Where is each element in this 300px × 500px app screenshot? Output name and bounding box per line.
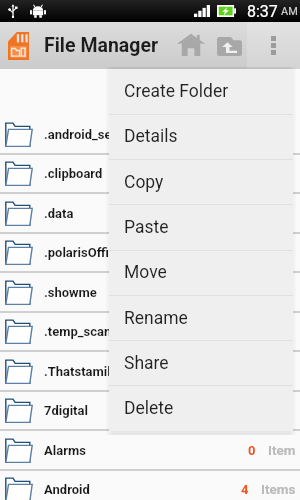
button[interactable]: .android_secure bbox=[0, 115, 300, 155]
button[interactable]: More options bbox=[247, 22, 300, 69]
button[interactable]: Home bbox=[174, 22, 208, 69]
staticText: Move bbox=[124, 262, 167, 283]
button[interactable]: Rename bbox=[109, 296, 293, 341]
button[interactable]: Android bbox=[0, 470, 300, 500]
button[interactable]: Paste bbox=[109, 205, 293, 250]
button[interactable]: Create Folder bbox=[109, 69, 293, 114]
staticText: .clipboard bbox=[44, 166, 296, 181]
button[interactable]: .showme bbox=[0, 273, 300, 313]
button[interactable]: .data bbox=[0, 194, 300, 234]
staticText: .Thatstamil bbox=[44, 364, 296, 379]
staticText: .data bbox=[44, 206, 296, 221]
button[interactable]: .Thatstamil bbox=[0, 352, 300, 392]
staticText: 4 bbox=[241, 482, 249, 497]
button[interactable]: 7digital bbox=[0, 391, 300, 431]
staticText: Android bbox=[44, 482, 241, 497]
staticText: Delete bbox=[124, 398, 174, 419]
button[interactable]: Move bbox=[109, 250, 293, 295]
staticText: Share bbox=[124, 353, 169, 374]
button[interactable]: .clipboard bbox=[0, 154, 300, 194]
staticText: Rename bbox=[124, 308, 188, 329]
staticText: Items bbox=[261, 481, 296, 497]
staticText: 8:37 bbox=[247, 2, 278, 21]
staticText: File Manager bbox=[44, 34, 159, 57]
button[interactable]: .temp_scanner bbox=[0, 312, 300, 352]
staticText: .temp_scanner bbox=[44, 324, 296, 339]
staticText: .showme bbox=[44, 285, 296, 300]
staticText: 7digital bbox=[44, 403, 296, 418]
staticText: Copy bbox=[124, 172, 164, 193]
staticText: Item bbox=[268, 442, 296, 458]
staticText: .polarisOffice5 bbox=[44, 245, 296, 260]
button[interactable]: Copy bbox=[109, 160, 293, 205]
button[interactable]: .polarisOffice5 bbox=[0, 233, 300, 273]
staticText: AM bbox=[281, 5, 298, 18]
staticText: Paste bbox=[124, 217, 169, 238]
button[interactable]: Share bbox=[109, 341, 293, 386]
button[interactable]: Details bbox=[109, 114, 293, 159]
staticText: Alarms bbox=[44, 443, 248, 458]
staticText: 0 bbox=[248, 443, 256, 458]
staticText: .android_secure bbox=[44, 127, 296, 142]
button[interactable]: Delete bbox=[109, 386, 293, 431]
button[interactable]: Alarms bbox=[0, 431, 300, 471]
button[interactable]: Up one level bbox=[212, 22, 247, 69]
staticText: Create Folder bbox=[124, 81, 229, 102]
staticText: Details bbox=[124, 126, 178, 147]
